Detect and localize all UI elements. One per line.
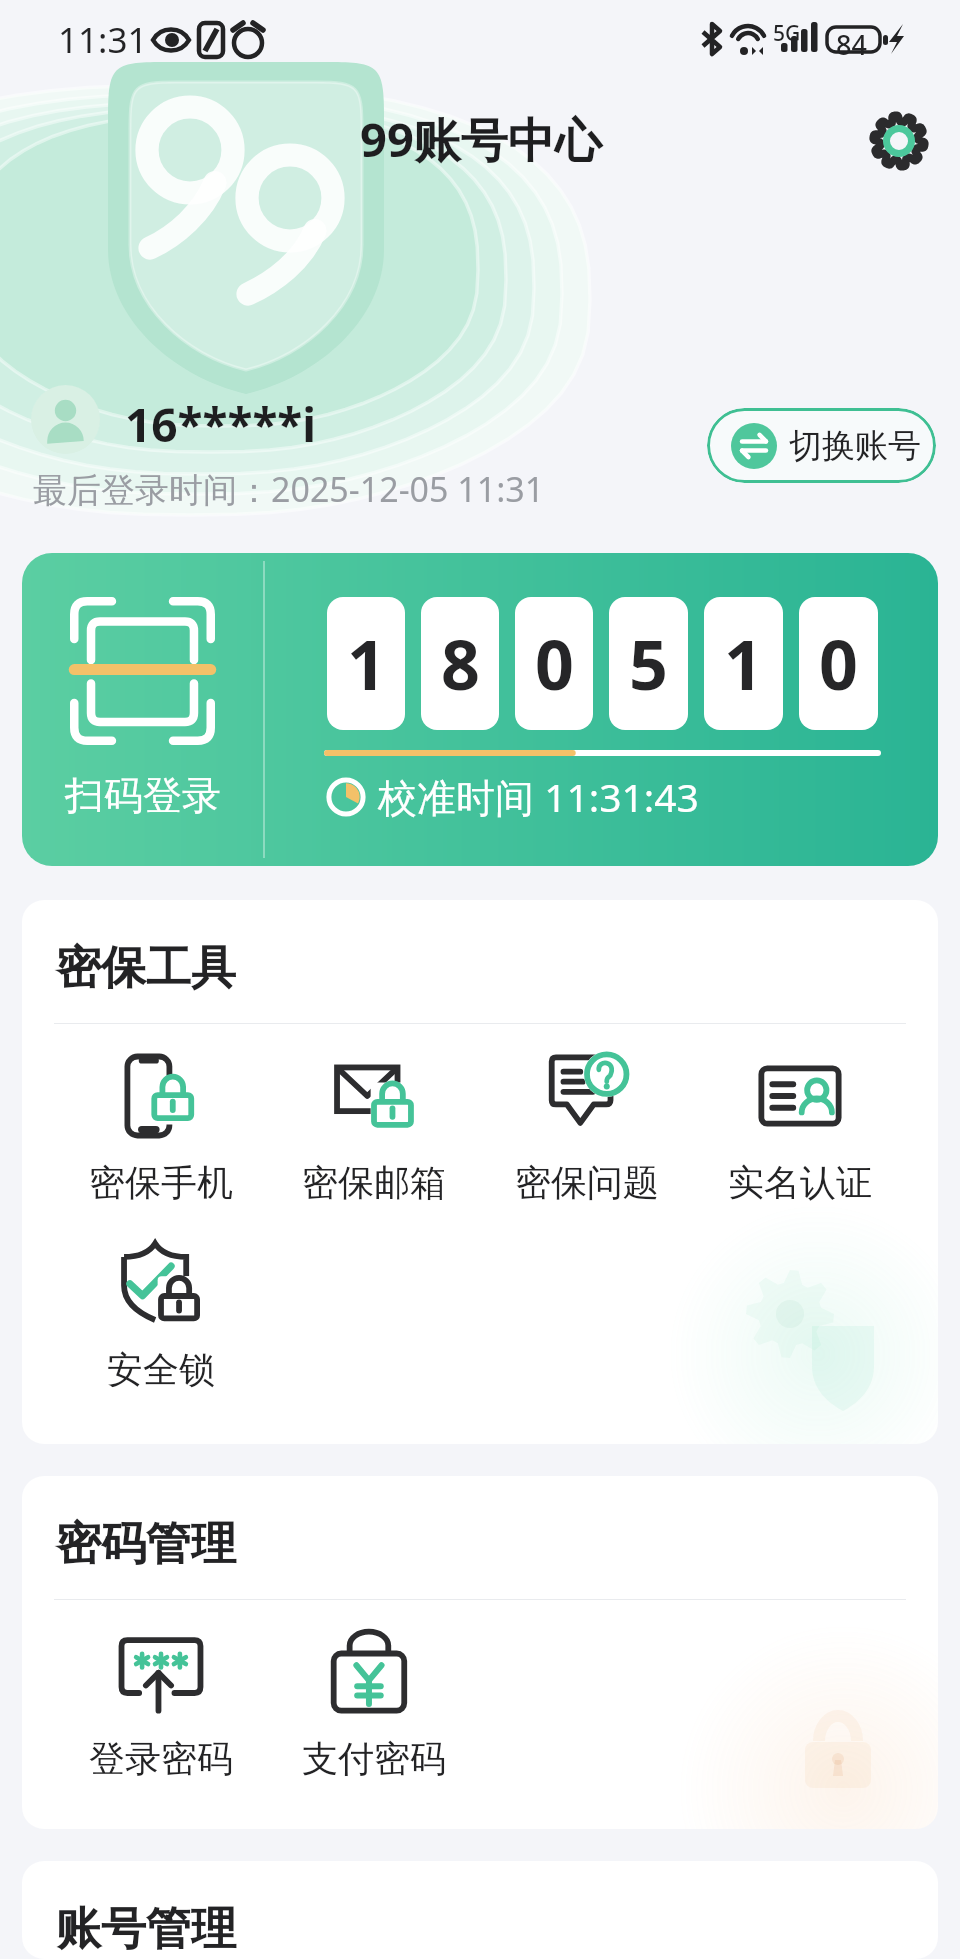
staticText: 安全锁: [107, 1347, 215, 1392]
staticText: 密保邮箱: [302, 1160, 446, 1205]
button[interactable]: 扫码登录: [22, 553, 263, 866]
button[interactable]: 密保问题: [480, 1054, 693, 1205]
staticText: 实名认证: [728, 1160, 872, 1205]
staticText: 5G: [773, 19, 801, 48]
staticText: 切换账号: [789, 425, 921, 467]
staticText: 1: [347, 617, 386, 710]
staticText: 最后登录时间：2025-12-05 11:31: [33, 466, 545, 512]
staticText: 16*****i: [125, 393, 317, 456]
staticText: 校准时间 11:31:43: [378, 770, 699, 823]
staticText: 账号管理: [56, 1901, 236, 1958]
staticText: 99账号中心: [360, 107, 602, 171]
staticText: 密保问题: [515, 1160, 659, 1205]
staticText: 登录密码: [89, 1736, 233, 1781]
button[interactable]: 登录密码: [54, 1630, 267, 1781]
button[interactable]: 安全锁: [54, 1241, 267, 1392]
button[interactable]: 切换账号: [707, 408, 936, 483]
staticText: 5: [629, 617, 668, 710]
staticText: 84: [836, 26, 867, 63]
staticText: 0: [819, 617, 858, 710]
button[interactable]: 密保手机: [54, 1054, 267, 1205]
staticText: 密码管理: [56, 1516, 236, 1573]
staticText: 密保工具: [56, 940, 236, 997]
staticText: 扫码登录: [65, 771, 221, 820]
staticText: 11:31: [58, 16, 148, 64]
staticText: 1: [724, 617, 763, 710]
button[interactable]: 支付密码: [267, 1630, 480, 1781]
staticText: 0: [535, 617, 574, 710]
staticText: 8: [441, 617, 480, 710]
staticText: 密保手机: [89, 1160, 233, 1205]
button[interactable]: Settings: [866, 108, 932, 174]
button[interactable]: 实名认证: [693, 1054, 906, 1205]
button[interactable]: 密保邮箱: [267, 1054, 480, 1205]
staticText: 支付密码: [302, 1736, 446, 1781]
